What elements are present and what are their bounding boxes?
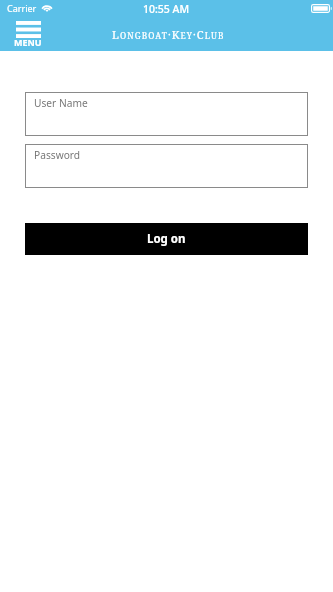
- button[interactable]: User Name: [25, 92, 308, 136]
- staticText: Log on: [147, 231, 186, 247]
- staticText: Carrier: [7, 2, 37, 14]
- staticText: LONGBOAT·KEY·CLUB: [112, 27, 225, 42]
- staticText: 10:55 AM: [143, 2, 190, 16]
- staticText: MENU: [14, 36, 42, 48]
- staticText: User Name: [34, 96, 88, 110]
- button[interactable]: Log on: [25, 223, 308, 255]
- staticText: Password: [34, 148, 81, 162]
- button[interactable]: Menu: [14, 21, 42, 50]
- button[interactable]: Password: [25, 144, 308, 188]
